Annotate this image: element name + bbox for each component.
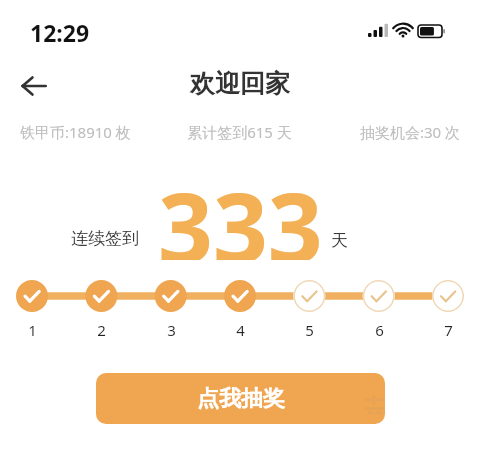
button[interactable]: Back — [10, 62, 58, 110]
staticText: 6 — [375, 320, 384, 340]
staticText: 4 — [236, 320, 245, 340]
staticText: 1 — [28, 320, 37, 340]
staticText: 5 — [305, 320, 314, 340]
staticText: 连续签到 — [71, 228, 139, 249]
staticText: 2 — [97, 320, 106, 340]
staticText: 点我抽奖 — [197, 385, 285, 413]
staticText: 333 — [158, 160, 323, 260]
staticText: 抽奖机会:30 次 — [313, 122, 460, 142]
staticText: 天 — [331, 230, 348, 251]
staticText: 铁甲币:18910 枚 — [20, 122, 166, 142]
staticText: 3 — [167, 320, 176, 340]
staticText: 欢迎回家 — [190, 68, 290, 99]
staticText: 12:29 — [30, 17, 90, 48]
staticText: 7 — [444, 320, 453, 340]
button[interactable]: 点我抽奖 — [96, 373, 385, 424]
staticText: 累计签到615 天 — [166, 122, 313, 142]
